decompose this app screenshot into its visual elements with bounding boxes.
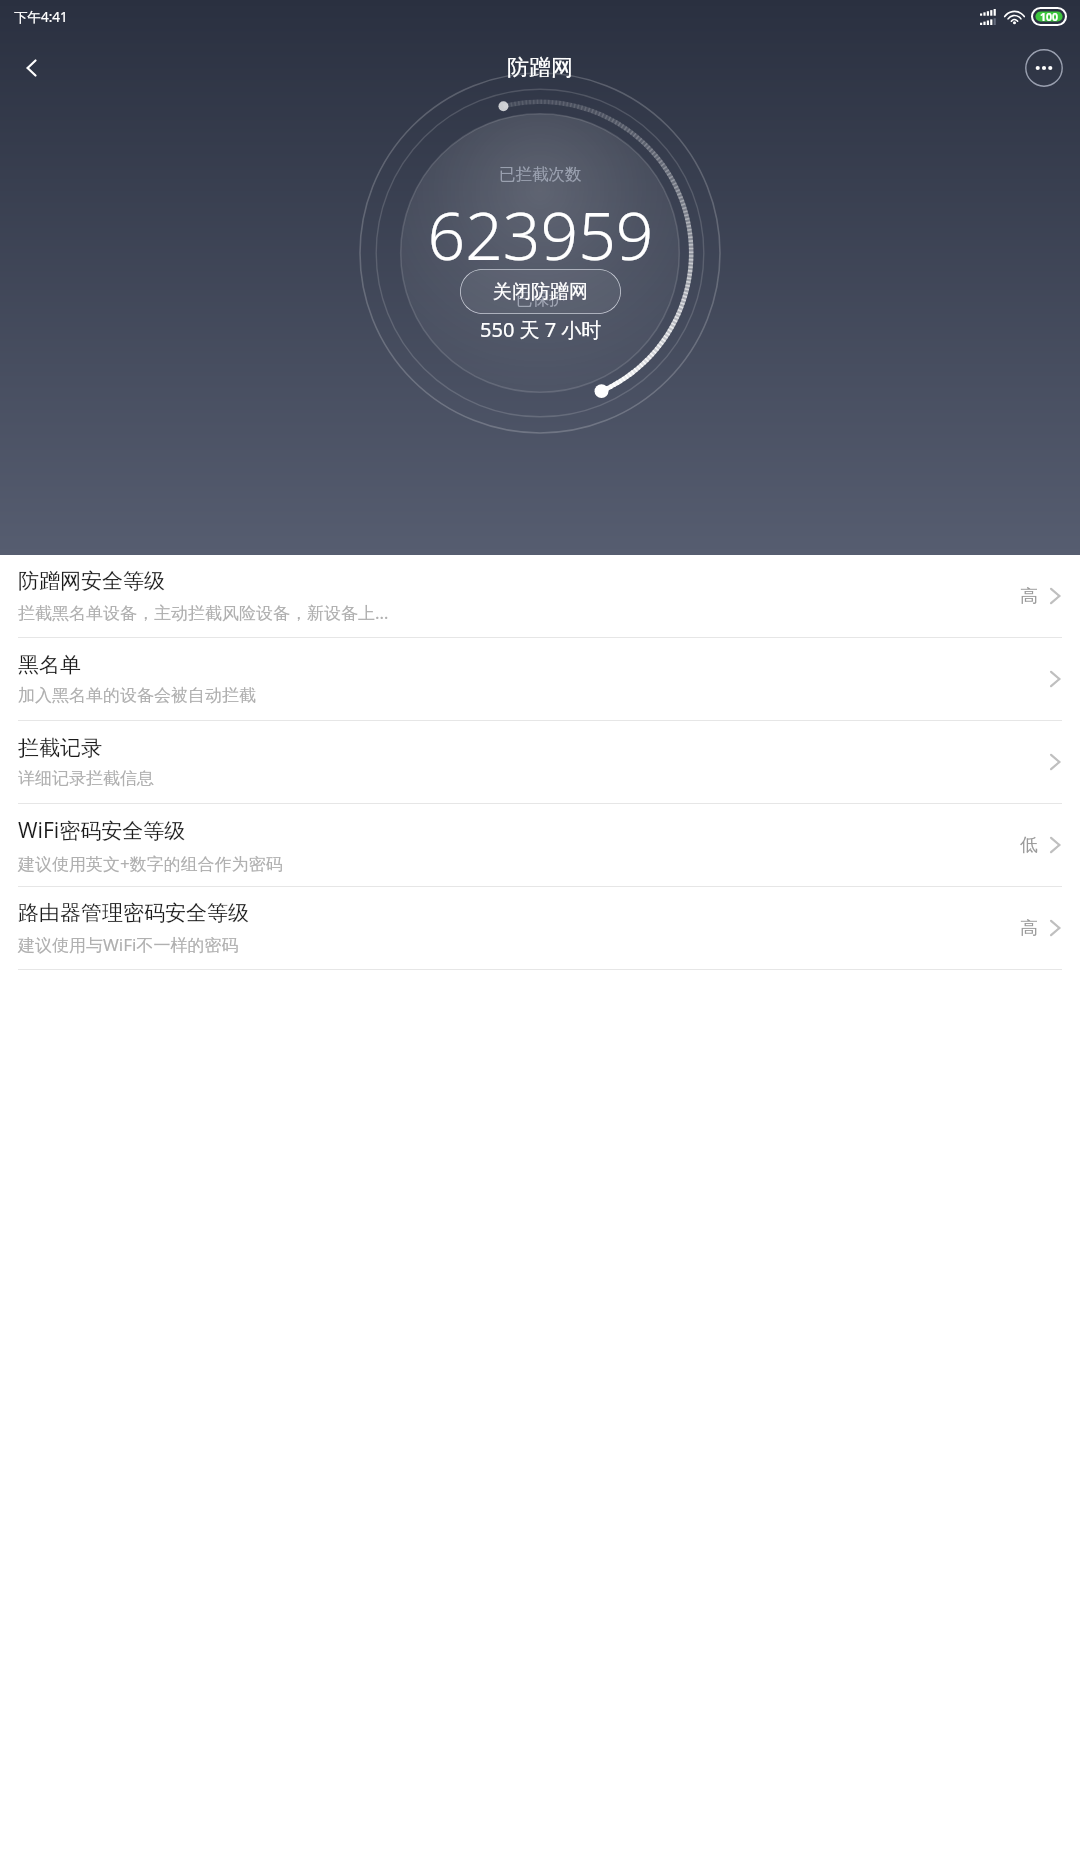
staticText: 黑名单	[18, 652, 81, 678]
staticText: 623959	[427, 189, 654, 279]
staticText: 加入黑名单的设备会被自动拦截	[18, 685, 256, 706]
staticText: 100	[1040, 10, 1059, 24]
staticText: 路由器管理密码安全等级	[18, 900, 249, 926]
staticText: 下午4:41	[14, 8, 68, 26]
staticText: 关闭防蹭网	[493, 280, 588, 304]
staticText: 高	[1020, 585, 1038, 608]
staticText: 已拦截次数	[499, 164, 582, 185]
staticText: 建议使用英文+数字的组合作为密码	[18, 852, 283, 875]
staticText: 建议使用与WiFi不一样的密码	[18, 933, 239, 956]
staticText: 详细记录拦截信息	[18, 768, 154, 789]
staticText: 低	[1020, 834, 1038, 857]
staticText: 高	[1020, 917, 1038, 940]
staticText: 拦截记录	[18, 735, 102, 761]
staticText: 拦截黑名单设备，主动拦截风险设备，新设备上…	[18, 601, 389, 624]
button[interactable]: 防蹭网安全等级	[0, 555, 1080, 637]
button[interactable]: WiFi密码安全等级	[0, 804, 1080, 886]
button[interactable]: 黑名单	[0, 638, 1080, 720]
button[interactable]: Back	[8, 44, 56, 92]
staticText: 已保护	[516, 289, 566, 310]
staticText: 550 天 7 小时	[480, 316, 602, 343]
staticText: 防蹭网安全等级	[18, 568, 165, 594]
button[interactable]: 关闭防蹭网	[460, 269, 621, 314]
button[interactable]: 路由器管理密码安全等级	[0, 887, 1080, 969]
button[interactable]: 拦截记录	[0, 721, 1080, 803]
staticText: 防蹭网	[507, 54, 573, 82]
button[interactable]: More options	[1025, 49, 1063, 87]
staticText: WiFi密码安全等级	[18, 816, 186, 845]
